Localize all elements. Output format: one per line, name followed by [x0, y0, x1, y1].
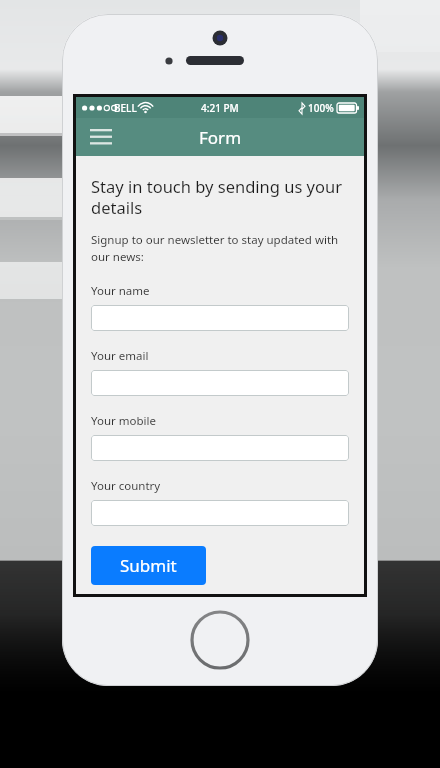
button[interactable] [91, 370, 349, 396]
staticText: Your email [91, 348, 149, 364]
staticText: Your name [91, 283, 150, 299]
staticText: BELL [114, 101, 137, 115]
staticText: Signup to our newsletter to stay updated… [91, 232, 349, 264]
button[interactable]: Menu [84, 122, 118, 152]
staticText: Your mobile [91, 413, 156, 429]
button[interactable]: Submit [91, 546, 206, 585]
staticText: Your country [91, 478, 161, 494]
staticText: 100% [308, 101, 334, 115]
staticText: Form [199, 126, 242, 149]
staticText: 4:21 PM [201, 101, 239, 115]
staticText: Submit [120, 554, 177, 577]
button[interactable] [91, 435, 349, 461]
staticText: Stay in touch by sending us your details [91, 175, 349, 219]
button[interactable] [91, 305, 349, 331]
button[interactable] [91, 500, 349, 526]
